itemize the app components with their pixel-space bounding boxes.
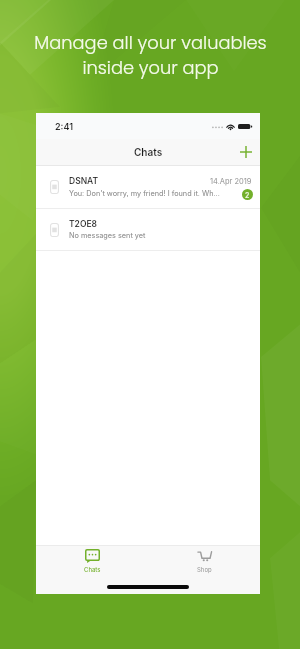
button[interactable]: New chat — [234, 139, 260, 165]
staticText: No messages sent yet — [69, 231, 260, 240]
staticText: inside your app — [82, 55, 219, 80]
button[interactable]: Shop — [148, 546, 260, 580]
staticText: Chats — [134, 146, 163, 158]
staticText: You: Don't worry, my friend! I found it.… — [69, 189, 242, 198]
staticText: 2:41 — [55, 121, 73, 132]
staticText: 14.Apr 2019 — [210, 177, 252, 186]
staticText: T2OE8 — [69, 219, 260, 229]
button[interactable]: T2OE8 — [36, 209, 260, 250]
staticText: 2 — [245, 191, 250, 199]
button[interactable]: Chats — [36, 546, 148, 580]
staticText: Chats — [84, 566, 101, 573]
button[interactable]: DSNAT — [36, 166, 260, 208]
staticText: Manage all your valuables — [34, 30, 267, 55]
staticText: Shop — [197, 566, 212, 573]
staticText: DSNAT — [69, 176, 210, 186]
